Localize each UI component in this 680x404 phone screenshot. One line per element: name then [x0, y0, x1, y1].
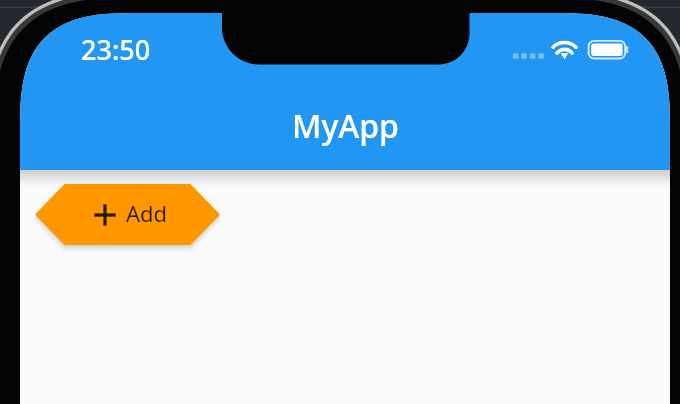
- staticText: MyApp: [292, 104, 399, 148]
- other: Mobile signal: [512, 52, 543, 60]
- other: Wi-Fi: [551, 36, 578, 64]
- other: Battery full: [587, 34, 629, 62]
- staticText: 23:50: [81, 31, 151, 68]
- button[interactable]: Add: [35, 184, 220, 245]
- staticText: Add: [126, 198, 168, 228]
